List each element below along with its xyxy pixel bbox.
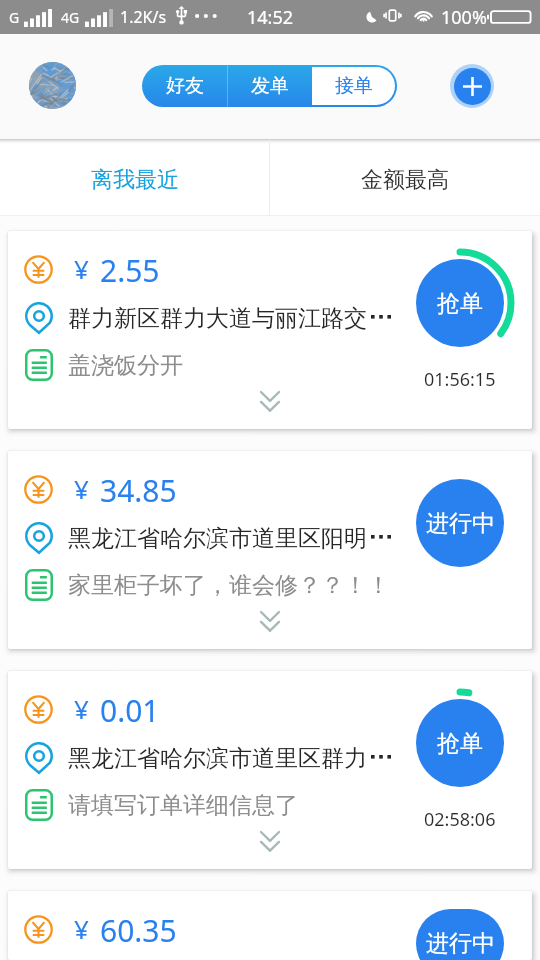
- staticText: 100%: [441, 5, 487, 30]
- staticText: 家里柜子坏了，谁会修？？！！: [68, 571, 390, 600]
- staticText: 1.2K/s: [120, 6, 167, 28]
- button[interactable]: 发单: [228, 65, 312, 107]
- staticText: 盖浇饭分开: [68, 351, 183, 380]
- button[interactable]: ¥: [8, 671, 532, 869]
- button[interactable]: 进行中: [416, 909, 504, 960]
- staticText: 黑龙江省哈尔滨市道里区群力: [68, 744, 367, 773]
- staticText: 02:58:06: [424, 807, 496, 832]
- staticText: 接单: [335, 74, 373, 98]
- button[interactable]: ¥: [8, 231, 532, 429]
- staticText: 60.35: [100, 910, 177, 942]
- button[interactable]: 进行中: [416, 479, 504, 567]
- staticText: 2.55: [100, 250, 160, 282]
- staticText: ¥: [74, 911, 89, 943]
- staticText: 群力新区群力大道与丽江路交: [68, 304, 367, 333]
- staticText: 黑龙江省哈尔滨市道里区阳明: [68, 524, 367, 553]
- staticText: ¥: [74, 691, 89, 723]
- staticText: 抢单: [437, 729, 483, 758]
- staticText: 离我最近: [91, 166, 179, 194]
- button[interactable]: 抢单: [416, 259, 504, 347]
- staticText: 进行中: [426, 929, 495, 958]
- staticText: 4G: [61, 8, 80, 27]
- staticText: ¥: [74, 471, 89, 503]
- staticText: G: [9, 8, 20, 27]
- button[interactable]: ¥: [8, 891, 532, 960]
- staticText: 好友: [166, 74, 204, 98]
- staticText: 0.01: [100, 690, 160, 722]
- button[interactable]: 好友: [142, 65, 227, 107]
- button[interactable]: Profile: [29, 62, 76, 109]
- button[interactable]: 接单: [312, 67, 395, 105]
- staticText: 抢单: [437, 289, 483, 318]
- staticText: 14:52: [247, 5, 294, 30]
- staticText: 发单: [251, 74, 289, 98]
- button[interactable]: 抢单: [416, 699, 504, 787]
- button[interactable]: 金额最高: [270, 139, 540, 216]
- button[interactable]: ¥: [8, 451, 532, 649]
- staticText: 进行中: [426, 509, 495, 538]
- staticText: 01:56:15: [424, 367, 496, 392]
- staticText: 金额最高: [361, 166, 449, 194]
- staticText: 34.85: [100, 470, 177, 502]
- button[interactable]: Add order: [454, 68, 491, 105]
- staticText: ¥: [74, 251, 89, 283]
- button[interactable]: 离我最近: [0, 139, 269, 216]
- staticText: 请填写订单详细信息了: [68, 791, 298, 820]
